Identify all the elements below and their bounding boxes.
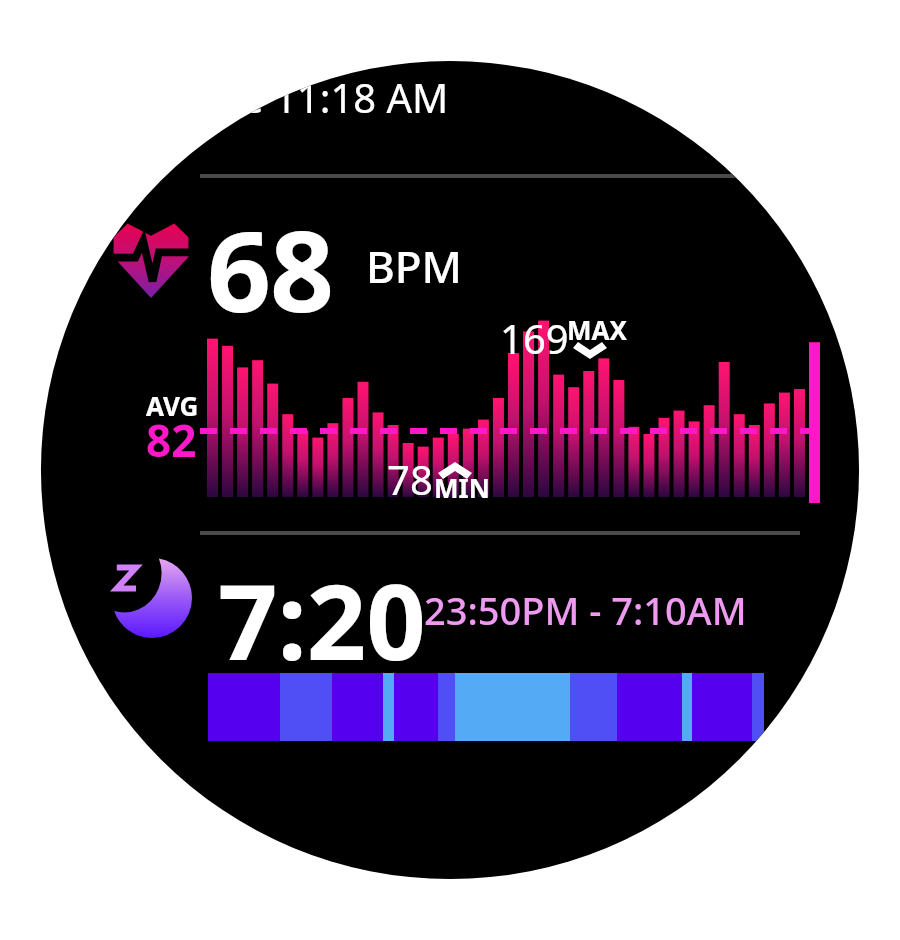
button[interactable]: Health summary [0, 0, 900, 940]
